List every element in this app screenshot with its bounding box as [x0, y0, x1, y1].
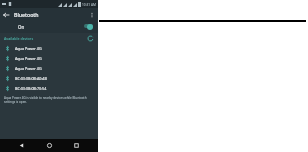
button[interactable]: Aqua Power 4G — [0, 53, 98, 63]
button[interactable]: BC:03:0B:0B:70:54 — [0, 83, 98, 93]
staticText: Aqua Power 4G — [15, 46, 42, 51]
button[interactable]: Home — [43, 139, 56, 152]
button[interactable]: Refresh — [87, 35, 94, 42]
staticText: Aqua Power 4G is visible to nearby devic… — [4, 96, 94, 104]
button[interactable]: Aqua Power 4G — [0, 63, 98, 73]
staticText: 10:31 AM — [82, 3, 96, 7]
button[interactable]: Recent apps — [70, 139, 83, 152]
button[interactable]: Aqua Power 4G — [0, 43, 98, 53]
staticText: BC:03:0B:0B:70:54 — [15, 86, 47, 91]
staticText: On — [18, 24, 25, 30]
button[interactable]: Navigate up — [0, 9, 12, 21]
button[interactable]: More options — [86, 9, 98, 21]
button[interactable]: Back — [15, 139, 28, 152]
button[interactable]: BC:03:0B:0B:A0:4B — [0, 73, 98, 83]
button[interactable]: On — [0, 21, 98, 33]
staticText: Available devices — [4, 36, 34, 41]
staticText: Aqua Power 4G — [15, 66, 42, 71]
staticText: Bluetooth — [14, 11, 39, 18]
staticText: Aqua Power 4G — [15, 56, 42, 61]
staticText: BC:03:0B:0B:A0:4B — [15, 76, 47, 81]
